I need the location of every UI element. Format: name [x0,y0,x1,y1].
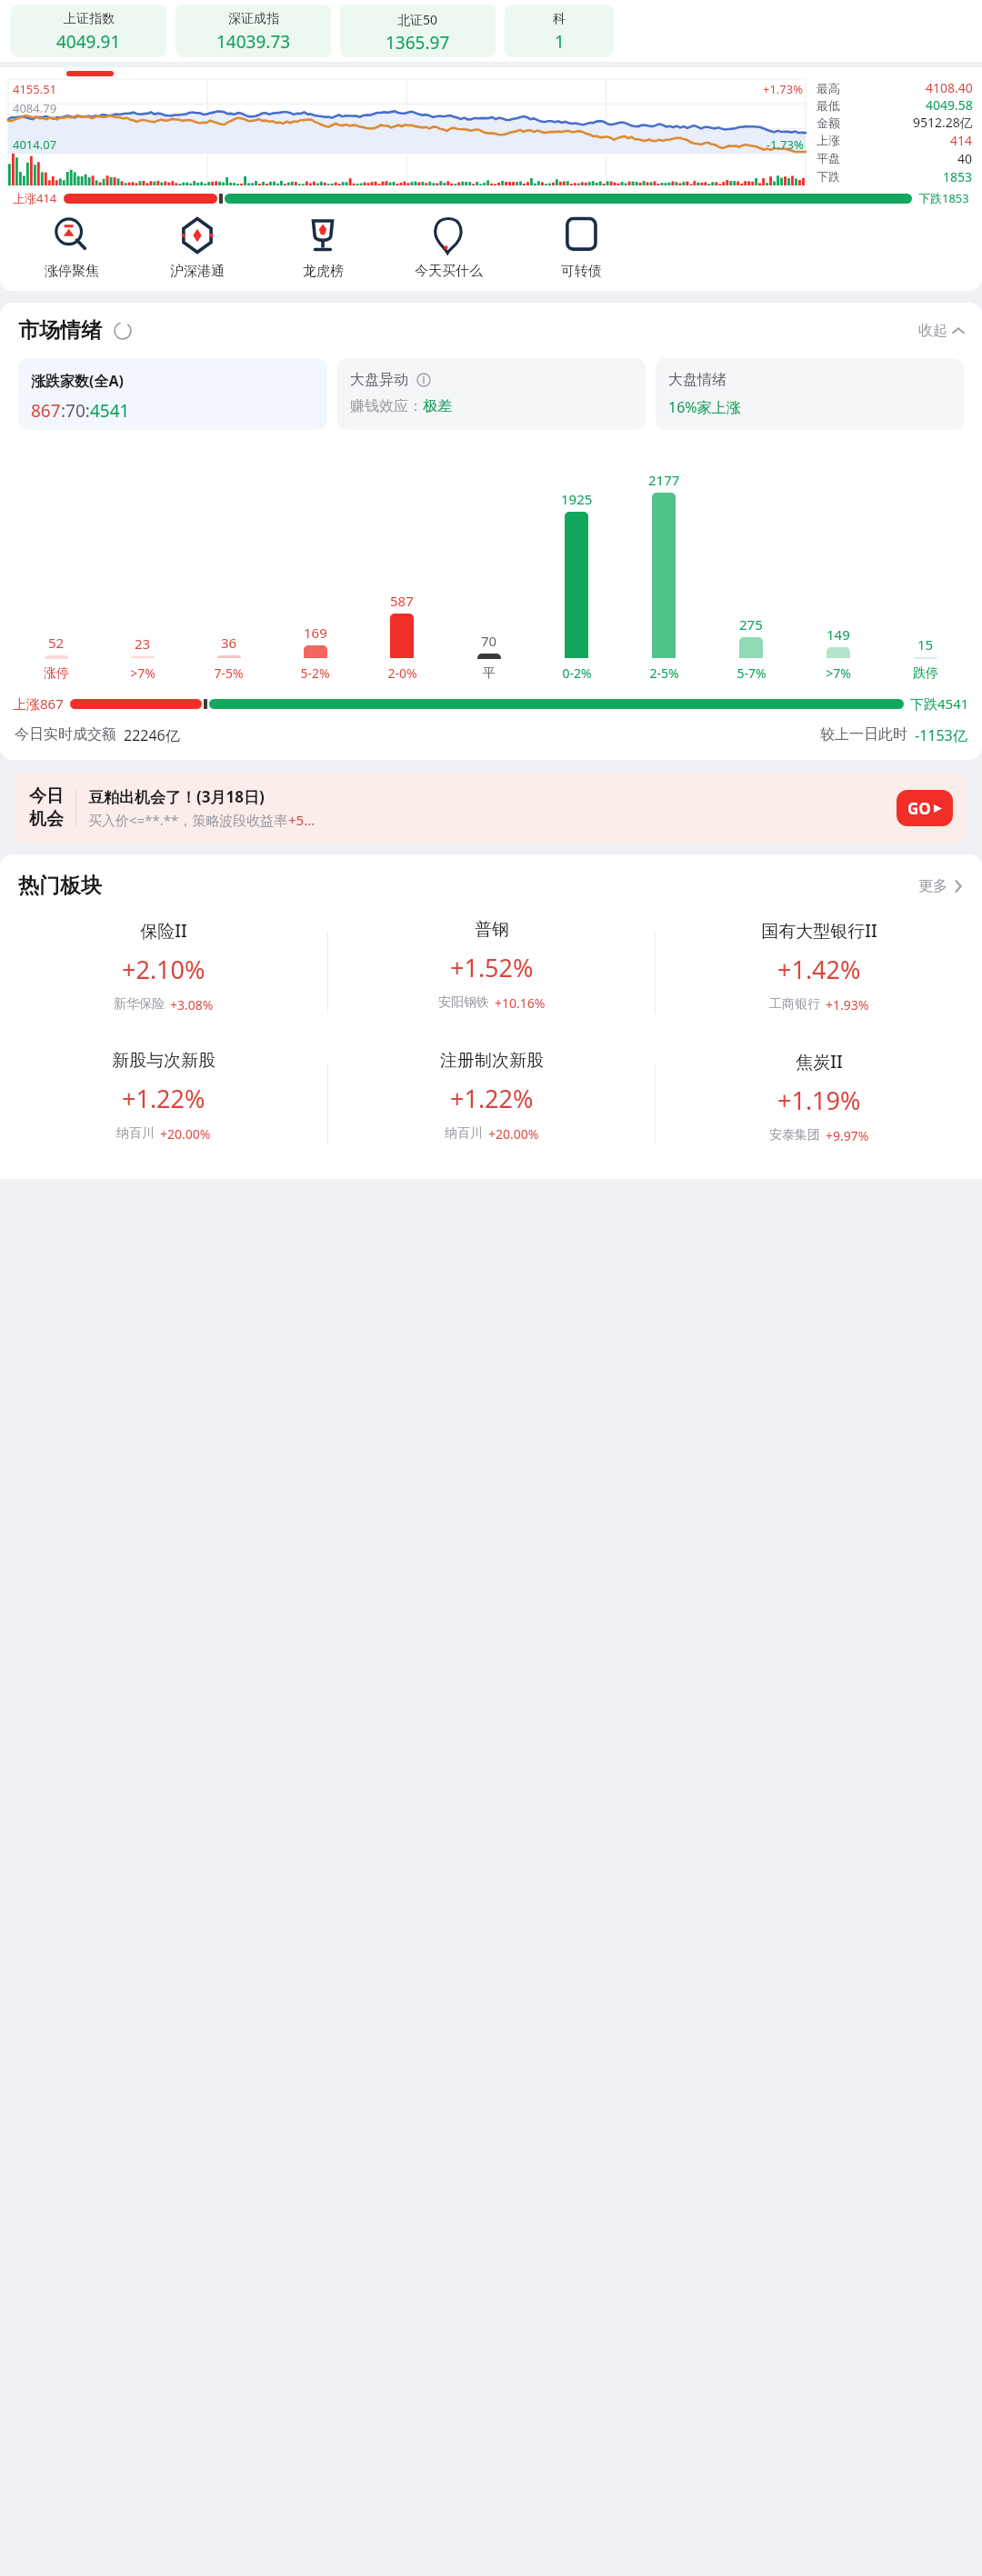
button[interactable]: 注册制次新股 [328,1050,655,1157]
button[interactable]: 深证成指 [175,5,331,57]
button[interactable]: 可转债 [527,215,635,280]
staticText: 4014.07 [13,136,57,153]
staticText: 9512.28亿 [913,114,973,131]
button[interactable]: 收起 [918,322,964,340]
staticText: 149 [827,625,850,644]
staticText: 下跌1853 [918,190,969,206]
staticText: +1.93% [826,996,869,1013]
button[interactable]: 保险II [0,919,327,1026]
button[interactable]: 热门板块 [18,873,964,899]
staticText: 沪深港通 [170,263,225,280]
button[interactable]: 涨跌家数(全A) [18,358,327,430]
button[interactable]: 龙虎榜 [269,215,376,280]
button[interactable]: 大盘异动 [337,358,646,430]
staticText: 867 [31,399,61,423]
button[interactable]: 上证指数 [11,5,166,57]
staticText: 龙虎榜 [303,263,344,280]
button[interactable]: 国有大型银行II [656,919,982,1026]
staticText: 4108.40 [926,79,973,96]
staticText: 1853 [943,168,973,185]
staticText: 4541 [90,399,130,423]
button[interactable]: 15 [882,450,969,682]
staticText: 14039.73 [216,30,291,54]
button[interactable]: 金额 [817,114,973,131]
button[interactable]: 焦炭II [656,1050,982,1157]
staticText: 最高 [817,81,840,95]
button[interactable]: 最低 [817,96,973,114]
staticText: 36 [221,634,237,652]
staticText: 上证指数 [64,11,115,27]
staticText: 纳百川 [445,1125,483,1142]
staticText: 新华保险 [114,996,165,1013]
staticText: 7-5% [214,664,244,682]
staticText: 今天买什么 [415,263,483,280]
button[interactable]: 169 [272,450,358,682]
staticText: +20.00% [488,1125,539,1143]
staticText: 涨跌家数(全A) [31,371,124,391]
button[interactable]: 23 [99,450,185,682]
button[interactable]: 36 [185,450,272,682]
button[interactable]: 587 [358,450,446,682]
button[interactable]: 刷新 [113,321,133,341]
button[interactable]: 275 [707,450,795,682]
staticText: +1.19% [777,1083,861,1117]
staticText: 工商银行 [769,996,820,1013]
staticText: 科 [553,11,566,27]
staticText: GO [907,798,931,819]
staticText: 收起 [918,322,947,340]
button[interactable]: GO [897,790,953,826]
staticText: +1.42% [777,953,861,986]
staticText: 下跌4541 [910,694,969,713]
staticText: 2-0% [387,664,417,682]
button[interactable]: 52 [13,450,99,682]
other: 沪深港通 [178,216,216,255]
staticText: 北证50 [397,11,438,28]
button[interactable]: 涨停聚焦 [18,215,125,280]
staticText: 涨停 [44,665,69,682]
staticText: 今日 [29,785,64,807]
button[interactable]: 北证50 [340,5,496,57]
staticText: +5... [288,811,316,829]
button[interactable]: 今日 [15,773,967,843]
button[interactable]: 最高 [817,79,973,96]
button[interactable]: 上涨 [817,131,973,149]
staticText: +1.52% [450,951,534,984]
staticText: 1 [555,30,565,54]
staticText: 275 [739,615,763,634]
button[interactable]: 1925 [533,450,620,682]
staticText: 焦炭II [796,1050,843,1073]
staticText: 机会 [29,808,64,830]
staticText: 2177 [648,471,680,489]
button[interactable] [66,71,114,76]
staticText: 587 [390,592,414,610]
button[interactable]: 70 [446,450,533,682]
staticText: 安泰集团 [769,1127,820,1143]
staticText: 下跌 [817,169,840,184]
staticText: 平盘 [817,151,840,165]
staticText: 16%家上涨 [668,397,741,417]
button[interactable]: 科 [505,5,614,57]
staticText: 安阳钢铁 [438,994,489,1011]
staticText: 最低 [817,98,840,113]
button[interactable]: 2177 [620,450,707,682]
staticText: +1.22% [122,1082,205,1115]
staticText: 22246亿 [124,725,180,745]
button[interactable]: 普钢 [328,919,655,1026]
button[interactable]: 沪深港通 [144,215,251,280]
staticText: -1.73% [767,136,804,153]
staticText: 414 [950,132,973,149]
button[interactable]: 149 [795,450,882,682]
button[interactable]: 平盘 [817,149,973,167]
button[interactable]: 大盘情绪 [656,358,964,430]
staticText: 52 [48,634,65,652]
staticText: 上涨414 [13,190,57,206]
staticText: 大盘情绪 [668,371,726,389]
button[interactable]: 下跌 [817,167,973,185]
button[interactable]: 新股与次新股 [0,1050,327,1157]
staticText: 普钢 [475,919,509,941]
button[interactable]: 今天买什么 [395,215,502,280]
staticText: 23 [135,634,151,653]
